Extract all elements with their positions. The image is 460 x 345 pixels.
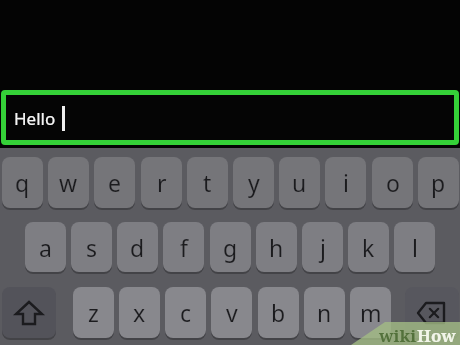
staticText: a: [39, 232, 52, 263]
button[interactable]: o: [372, 157, 413, 208]
button[interactable]: f: [163, 222, 204, 272]
staticText: c: [180, 297, 192, 328]
button[interactable]: x: [119, 287, 160, 338]
staticText: w: [59, 167, 78, 198]
staticText: n: [317, 297, 332, 328]
button[interactable]: i: [325, 157, 366, 208]
staticText: t: [203, 167, 212, 198]
button[interactable]: a: [25, 222, 66, 272]
button[interactable]: h: [256, 222, 297, 272]
button[interactable]: w: [48, 157, 89, 208]
staticText: p: [431, 167, 446, 198]
staticText: Hello: [14, 107, 56, 130]
button[interactable]: r: [141, 157, 182, 208]
staticText: m: [360, 297, 382, 328]
staticText: z: [88, 297, 99, 328]
button[interactable]: g: [210, 222, 251, 272]
button[interactable]: j: [302, 222, 343, 272]
staticText: j: [320, 232, 326, 263]
staticText: i: [343, 167, 349, 198]
button[interactable]: m: [350, 287, 391, 338]
staticText: How: [417, 324, 456, 345]
staticText: l: [412, 232, 418, 263]
button[interactable]: [2, 287, 56, 338]
button[interactable]: e: [94, 157, 135, 208]
staticText: f: [180, 232, 188, 263]
staticText: e: [108, 167, 121, 198]
button[interactable]: y: [233, 157, 274, 208]
staticText: k: [362, 232, 375, 263]
staticText: r: [157, 167, 167, 198]
staticText: d: [130, 232, 145, 263]
staticText: y: [248, 167, 260, 198]
button[interactable]: l: [394, 222, 435, 272]
staticText: o: [386, 167, 400, 198]
staticText: u: [292, 167, 307, 198]
button[interactable]: c: [165, 287, 206, 338]
staticText: s: [86, 232, 98, 263]
button[interactable]: Hello: [1, 90, 459, 145]
staticText: q: [15, 167, 30, 198]
button[interactable]: u: [279, 157, 320, 208]
button[interactable]: d: [117, 222, 158, 272]
button[interactable]: q: [2, 157, 43, 208]
button[interactable]: k: [348, 222, 389, 272]
button[interactable]: v: [211, 287, 252, 338]
button[interactable]: [405, 287, 459, 338]
staticText: g: [223, 232, 238, 263]
staticText: h: [269, 232, 284, 263]
button[interactable]: t: [187, 157, 228, 208]
staticText: wiki: [379, 324, 417, 345]
staticText: x: [133, 297, 146, 328]
button[interactable]: z: [73, 287, 114, 338]
staticText: b: [271, 297, 286, 328]
button[interactable]: n: [304, 287, 345, 338]
button[interactable]: p: [418, 157, 459, 208]
button[interactable]: s: [71, 222, 112, 272]
button[interactable]: b: [258, 287, 299, 338]
staticText: v: [226, 297, 238, 328]
